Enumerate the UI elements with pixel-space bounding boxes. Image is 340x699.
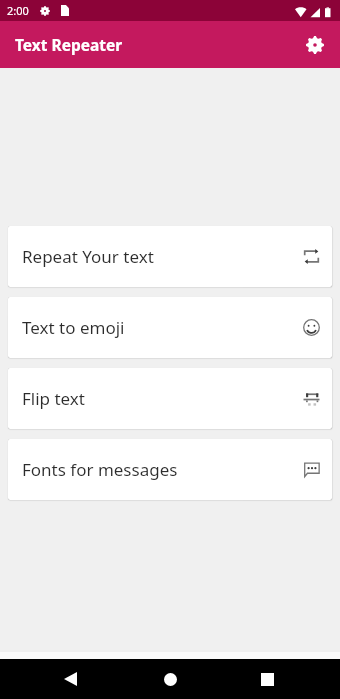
button[interactable]: Home xyxy=(150,659,190,699)
button[interactable]: Fonts for messages xyxy=(8,439,332,500)
staticText: Text Repeater xyxy=(15,34,123,55)
staticText: Fonts for messages xyxy=(22,458,178,481)
staticText: Repeat Your text xyxy=(22,245,154,268)
button[interactable]: Flip text xyxy=(8,368,332,429)
button[interactable]: Text to emoji xyxy=(8,297,332,358)
staticText: Flip text xyxy=(22,387,85,410)
staticText: 2:00 xyxy=(7,3,29,18)
button[interactable]: Repeat Your text xyxy=(8,226,332,287)
button[interactable]: Recents xyxy=(247,659,287,699)
button[interactable]: Back xyxy=(50,659,90,699)
staticText: Text to emoji xyxy=(22,316,125,339)
button[interactable]: Settings xyxy=(295,25,335,65)
